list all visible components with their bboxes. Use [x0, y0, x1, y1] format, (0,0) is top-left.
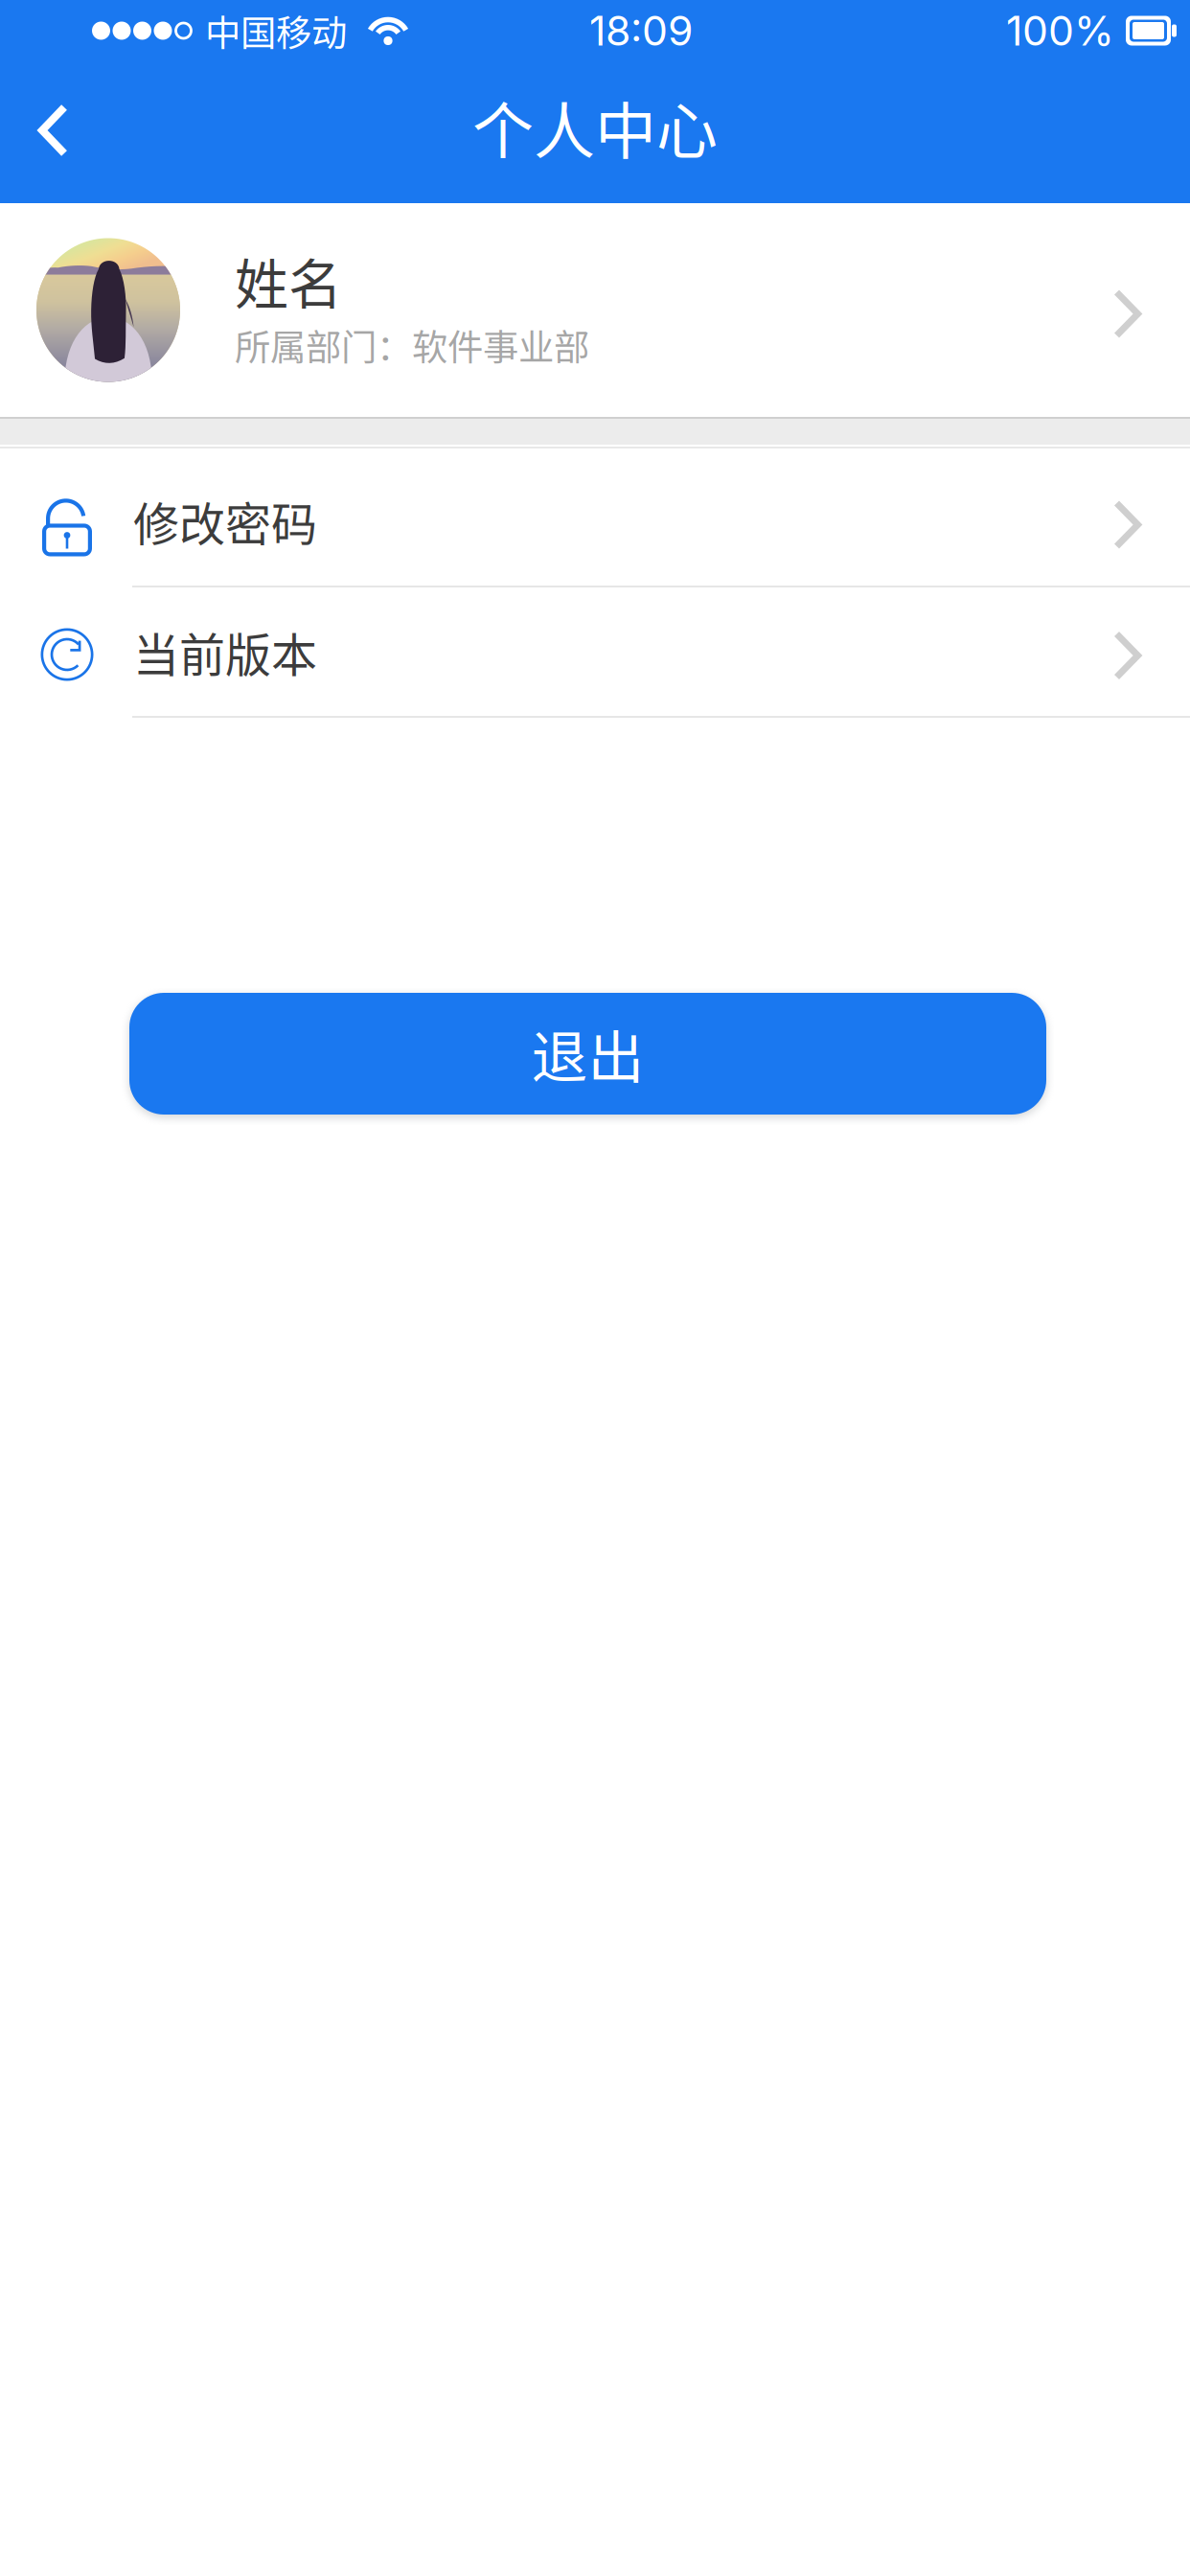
staticText: 姓名 [235, 241, 342, 319]
button[interactable]: 姓名 [0, 203, 1190, 417]
button[interactable]: 当前版本 [0, 587, 1190, 716]
button[interactable]: Back [0, 61, 107, 203]
staticText: 所属部门：软件事业部 [235, 319, 589, 371]
staticText: 个人中心 [472, 82, 718, 171]
staticText: 退出 [531, 1013, 644, 1094]
staticText: 中国移动 [205, 5, 347, 57]
button[interactable]: 修改密码 [0, 448, 1190, 586]
staticText: 100% [1006, 6, 1114, 55]
staticText: 当前版本 [133, 618, 317, 685]
button[interactable]: 退出 [129, 993, 1046, 1115]
staticText: 修改密码 [133, 488, 317, 554]
staticText: 18:09 [589, 6, 693, 55]
